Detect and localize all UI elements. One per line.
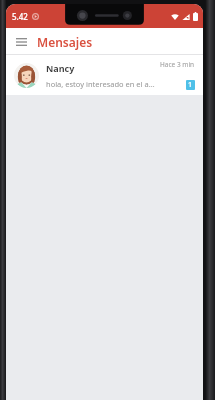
staticText: 5.42 (12, 11, 28, 22)
staticText: Nancy (46, 62, 75, 74)
staticText: 1 (188, 80, 193, 90)
button[interactable]: Open navigation menu (13, 34, 29, 50)
staticText: hola, estoy interesado en el auto (46, 79, 156, 89)
staticText: Mensajes (37, 34, 93, 50)
staticText: Hace 3 min (160, 60, 195, 69)
button[interactable]: Nancy (6, 55, 203, 95)
